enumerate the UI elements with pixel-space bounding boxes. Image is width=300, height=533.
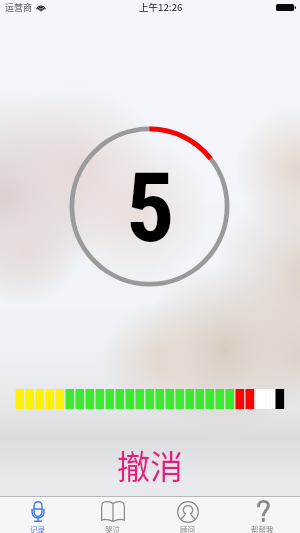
button[interactable]: Advisor <box>150 497 225 533</box>
button[interactable]: Record <box>0 497 75 533</box>
staticText: 哭泣 <box>105 524 120 533</box>
staticText: 5 <box>126 152 175 265</box>
button[interactable]: 撤消 <box>117 441 183 489</box>
staticText: 上午12:26 <box>139 0 183 14</box>
staticText: 帮帮我 <box>251 524 274 533</box>
button[interactable]: Cry <box>75 497 150 533</box>
button[interactable]: Help me <box>225 497 300 533</box>
staticText: 顾问 <box>180 524 195 533</box>
staticText: 记录 <box>30 524 45 533</box>
staticText: 运营商 <box>5 1 33 14</box>
